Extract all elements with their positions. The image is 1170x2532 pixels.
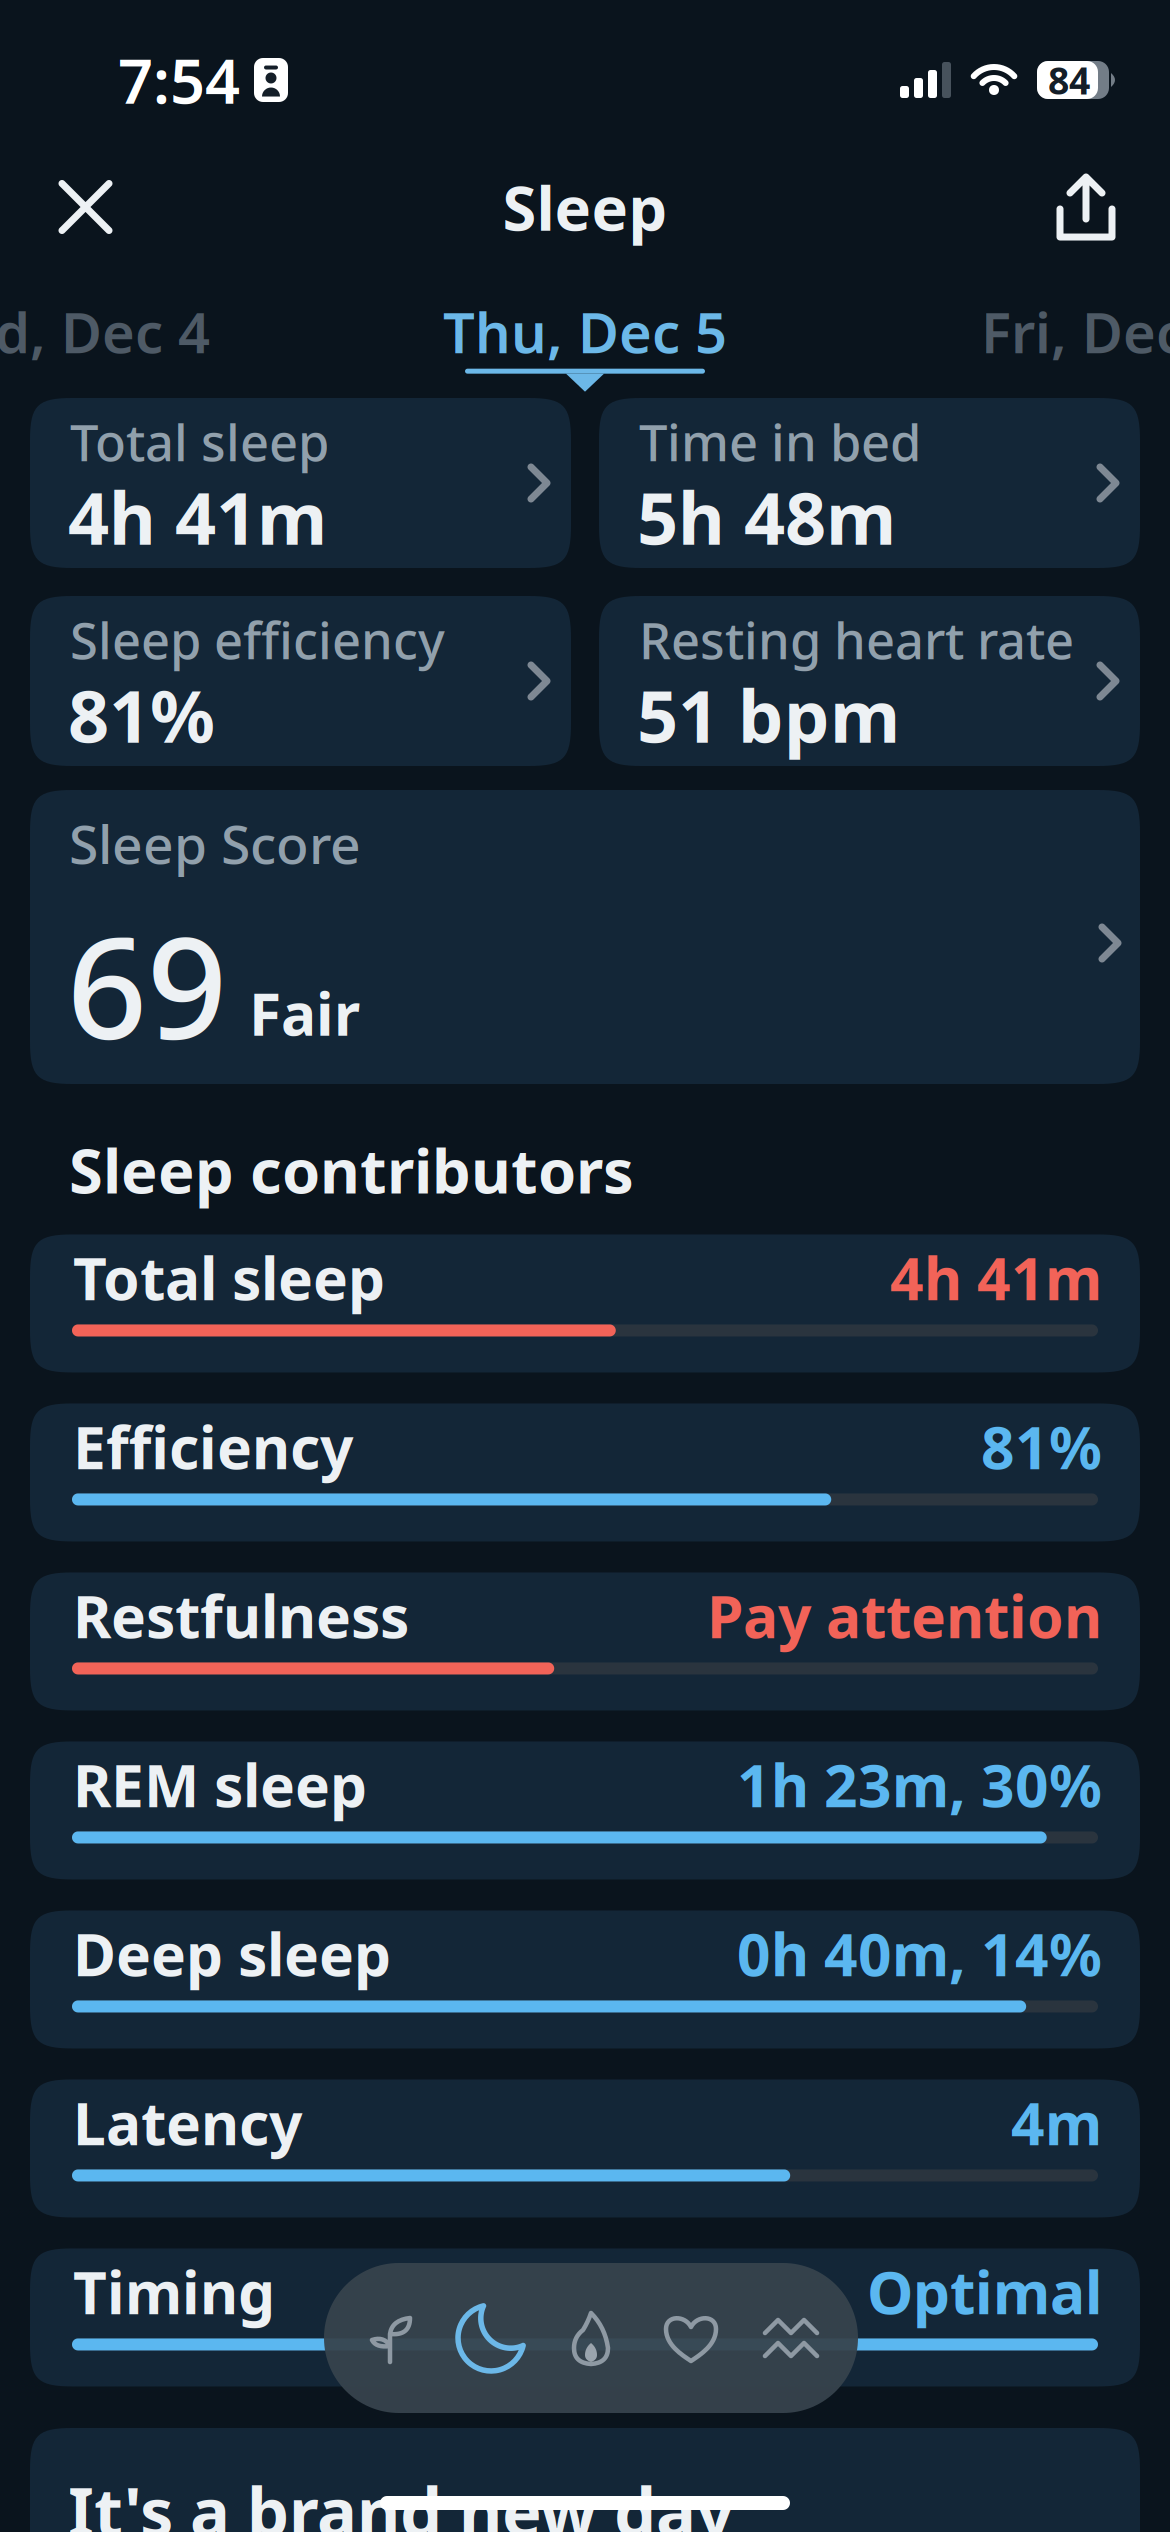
button[interactable]	[341, 2263, 441, 2413]
staticText: Total sleep	[70, 408, 329, 475]
button[interactable]: Time in bed	[599, 398, 1140, 568]
button[interactable]: Sleep efficiency	[30, 596, 571, 766]
staticText: It's a brand new day	[68, 2466, 734, 2532]
staticText: 81%	[981, 1407, 1102, 1485]
staticText: Latency	[73, 2083, 302, 2161]
staticText: 4m	[1011, 2083, 1102, 2161]
staticText: 7:54	[118, 39, 240, 121]
button[interactable]: Timing	[30, 2248, 1140, 2386]
staticText: 0h 40m, 14%	[737, 1914, 1102, 1992]
staticText: REM sleep	[73, 1745, 367, 1823]
button[interactable]: Latency	[30, 2079, 1140, 2217]
staticText: Sleep efficiency	[70, 606, 445, 673]
staticText: Timing	[73, 2252, 275, 2330]
button[interactable]: Resting heart rate	[599, 596, 1140, 766]
button[interactable]	[1056, 173, 1170, 241]
button[interactable]: Total sleep	[30, 1234, 1140, 1372]
staticText: 81%	[68, 667, 215, 763]
staticText: Restfulness	[73, 1576, 409, 1654]
staticText: Resting heart rate	[639, 606, 1074, 673]
staticText: Sleep	[502, 166, 667, 248]
staticText: 84	[1048, 55, 1090, 105]
staticText: 4h 41m	[890, 1238, 1102, 1316]
staticText: Efficiency	[73, 1407, 353, 1485]
button[interactable]: REM sleep	[30, 1741, 1140, 1879]
staticText: Time in bed	[639, 408, 921, 475]
staticText: Fri, Dec	[981, 294, 1170, 369]
staticText: 4h 41m	[68, 469, 327, 565]
button[interactable]: Restfulness	[30, 1572, 1140, 1710]
staticText: Optimal	[867, 2252, 1102, 2330]
staticText: Fair	[249, 974, 360, 1052]
staticText: Total sleep	[73, 1238, 385, 1316]
staticText: Thu, Dec 5	[443, 294, 727, 369]
button[interactable]	[641, 2263, 741, 2413]
button[interactable]: Thu, Dec 5	[443, 294, 727, 369]
staticText: 51 bpm	[637, 667, 900, 763]
button[interactable]	[541, 2263, 641, 2413]
staticText: 69	[67, 892, 227, 1078]
button[interactable]	[741, 2263, 841, 2413]
button[interactable]: Deep sleep	[30, 1910, 1140, 2048]
staticText: Deep sleep	[73, 1914, 391, 1992]
staticText: 1h 23m, 30%	[737, 1745, 1102, 1823]
staticText: Pay attention	[707, 1576, 1102, 1654]
button[interactable]: Sleep Score	[30, 790, 1140, 1084]
staticText: 5h 48m	[637, 469, 896, 565]
button[interactable]	[441, 2263, 541, 2413]
button[interactable]	[0, 181, 111, 232]
staticText: Sleep Score	[69, 808, 361, 879]
button[interactable]: Total sleep	[30, 398, 571, 568]
button[interactable]: Efficiency	[30, 1403, 1140, 1541]
staticText: ed, Dec 4	[0, 294, 210, 369]
staticText: Sleep contributors	[69, 1129, 634, 1210]
